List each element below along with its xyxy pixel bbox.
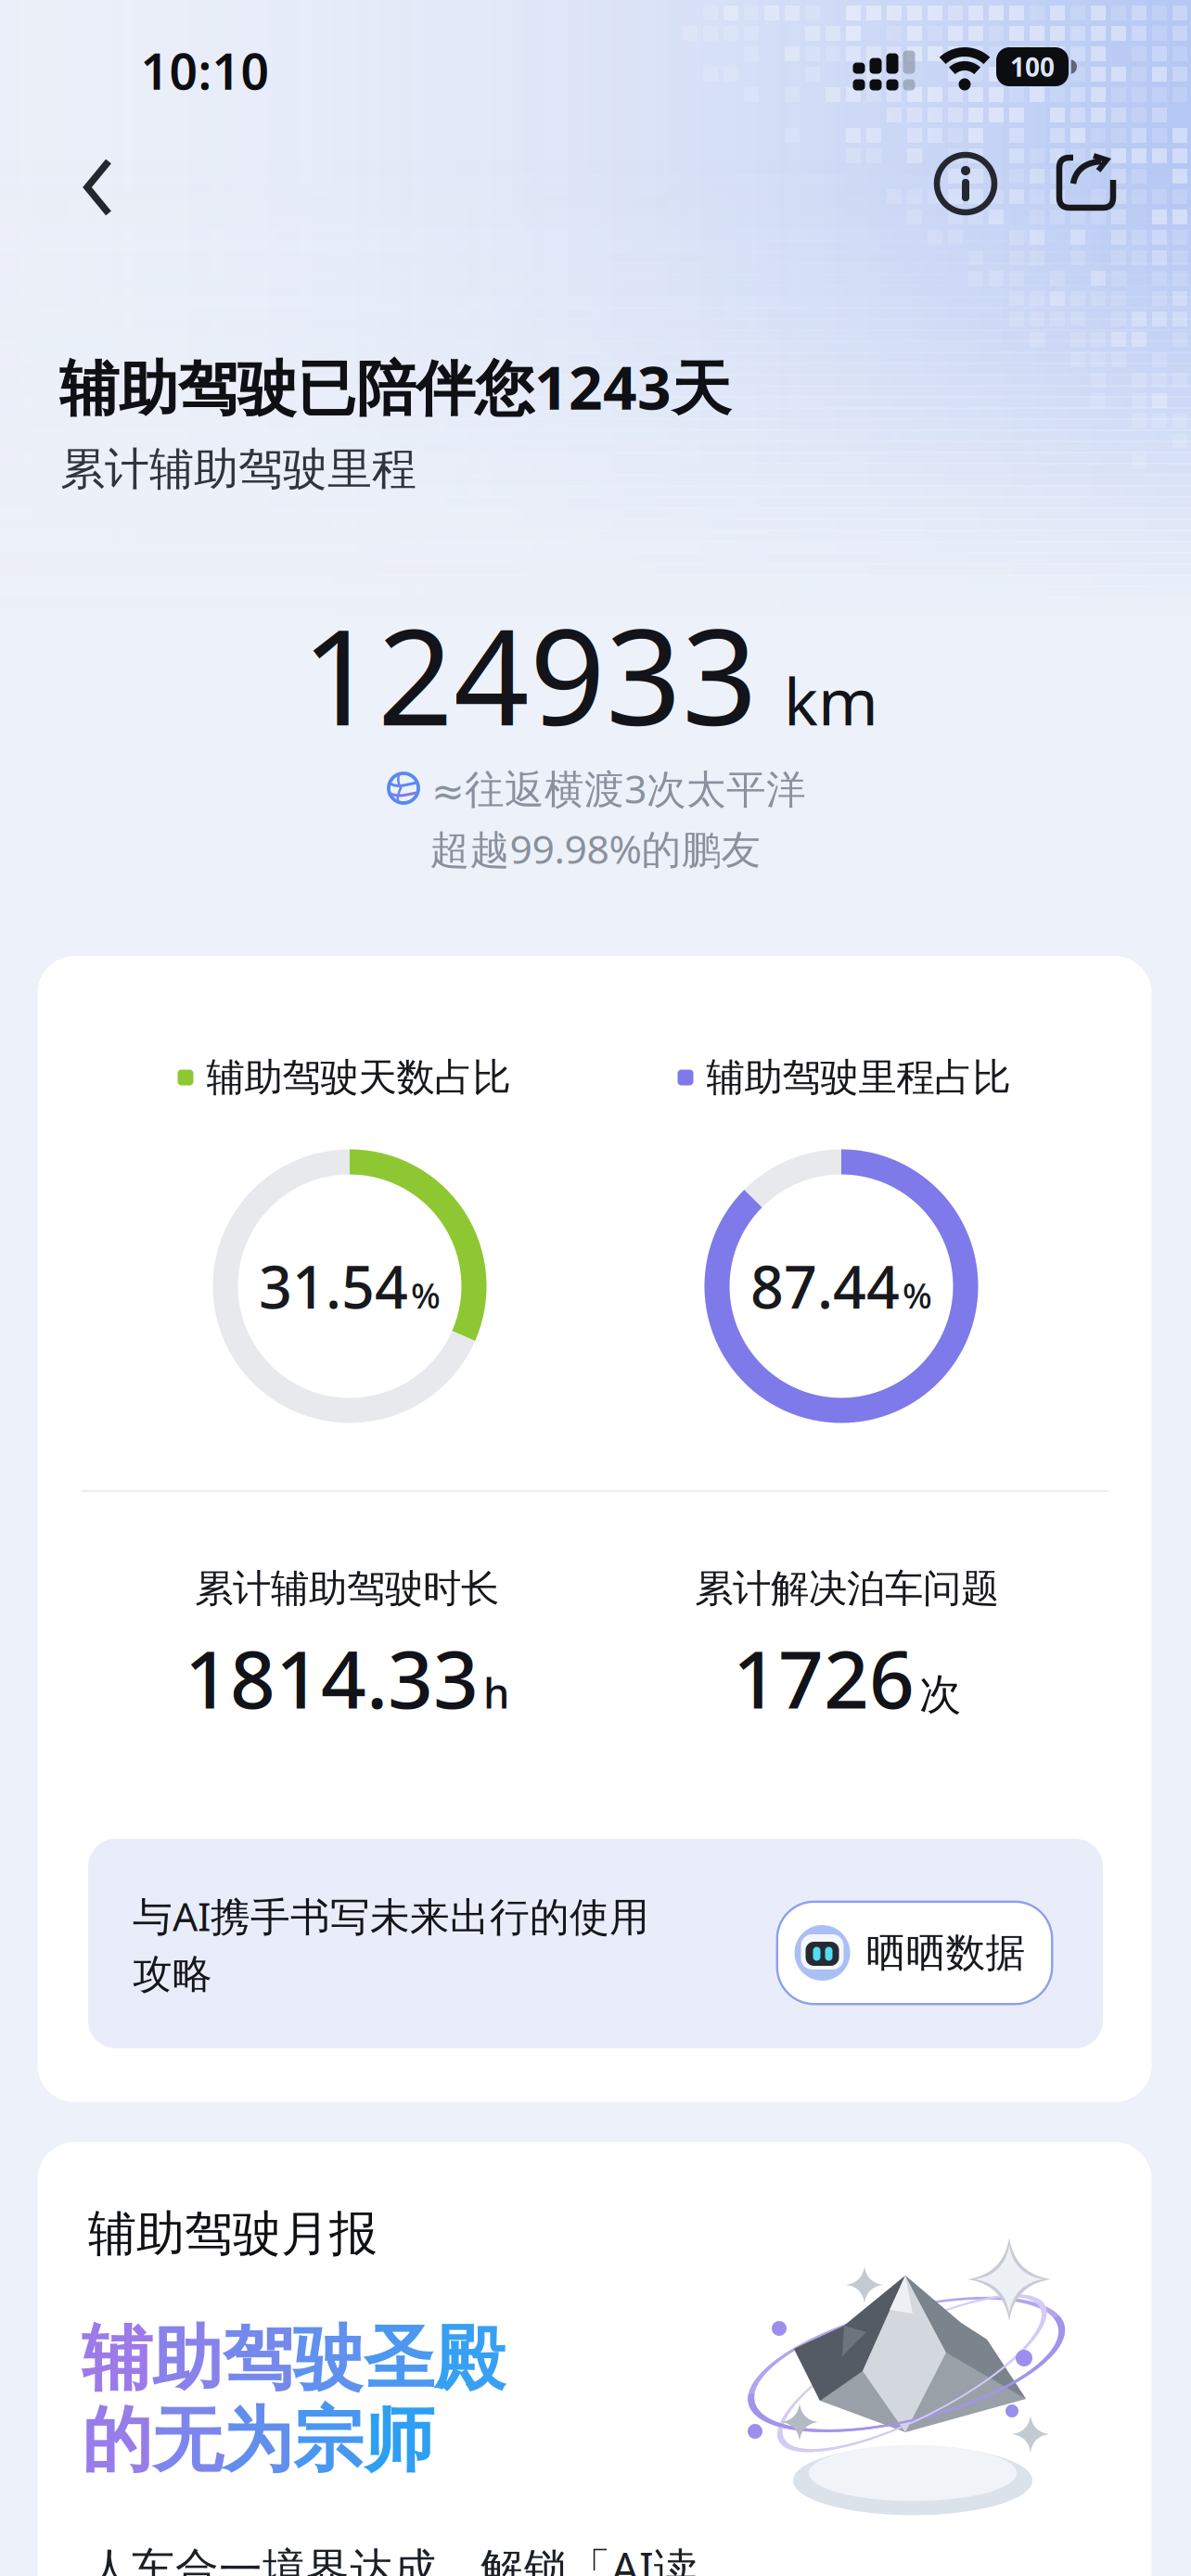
- button[interactable]: 晒晒数据: [776, 1900, 1053, 2005]
- staticText: 辅助驾驶月报: [88, 2204, 378, 2264]
- staticText: 辅: [82, 2316, 152, 2402]
- staticText: 1726: [733, 1625, 915, 1730]
- staticText: 累计辅助驾驶里程: [60, 442, 416, 497]
- staticText: 124933: [301, 586, 758, 762]
- button[interactable]: Back: [70, 144, 128, 231]
- staticText: 与AI携手书写未来出行的使用: [133, 1890, 649, 1942]
- staticText: 宗: [293, 2397, 364, 2484]
- staticText: 师: [364, 2397, 434, 2484]
- staticText: %: [903, 1272, 932, 1318]
- staticText: 1814.33: [185, 1625, 479, 1730]
- staticText: km: [784, 658, 878, 743]
- staticText: 晒晒数据: [866, 1929, 1025, 1977]
- staticText: 无: [152, 2397, 223, 2484]
- staticText: 超越99.98%的鹏友: [430, 822, 761, 875]
- staticText: 人车合一境界达成，解锁「AI读: [88, 2539, 698, 2576]
- staticText: 助: [152, 2316, 223, 2402]
- staticText: 为: [223, 2397, 293, 2484]
- staticText: 100: [1010, 50, 1055, 84]
- staticText: 圣: [364, 2316, 434, 2402]
- staticText: %: [411, 1272, 441, 1318]
- staticText: 87.44: [750, 1248, 900, 1325]
- staticText: 累计辅助驾驶时长: [195, 1565, 499, 1612]
- staticText: ≈往返横渡3次太平洋: [431, 762, 806, 815]
- staticText: 的: [82, 2397, 152, 2484]
- staticText: 攻略: [133, 1950, 212, 1998]
- staticText: 10:10: [141, 38, 269, 103]
- staticText: h: [483, 1664, 509, 1720]
- staticText: 次: [919, 1669, 961, 1720]
- staticText: 殿: [434, 2316, 505, 2402]
- staticText: 驶: [293, 2316, 364, 2402]
- staticText: 辅助驾驶已陪伴您1243天: [59, 347, 731, 426]
- staticText: 辅助驾驶里程占比: [706, 1054, 1011, 1101]
- button[interactable]: Info: [927, 145, 1005, 223]
- staticText: 31.54: [259, 1248, 408, 1325]
- staticText: 累计解决泊车问题: [695, 1565, 999, 1612]
- button[interactable]: Share: [1049, 146, 1125, 222]
- staticText: 辅助驾驶天数占比: [206, 1054, 511, 1101]
- staticText: 驾: [223, 2316, 293, 2402]
